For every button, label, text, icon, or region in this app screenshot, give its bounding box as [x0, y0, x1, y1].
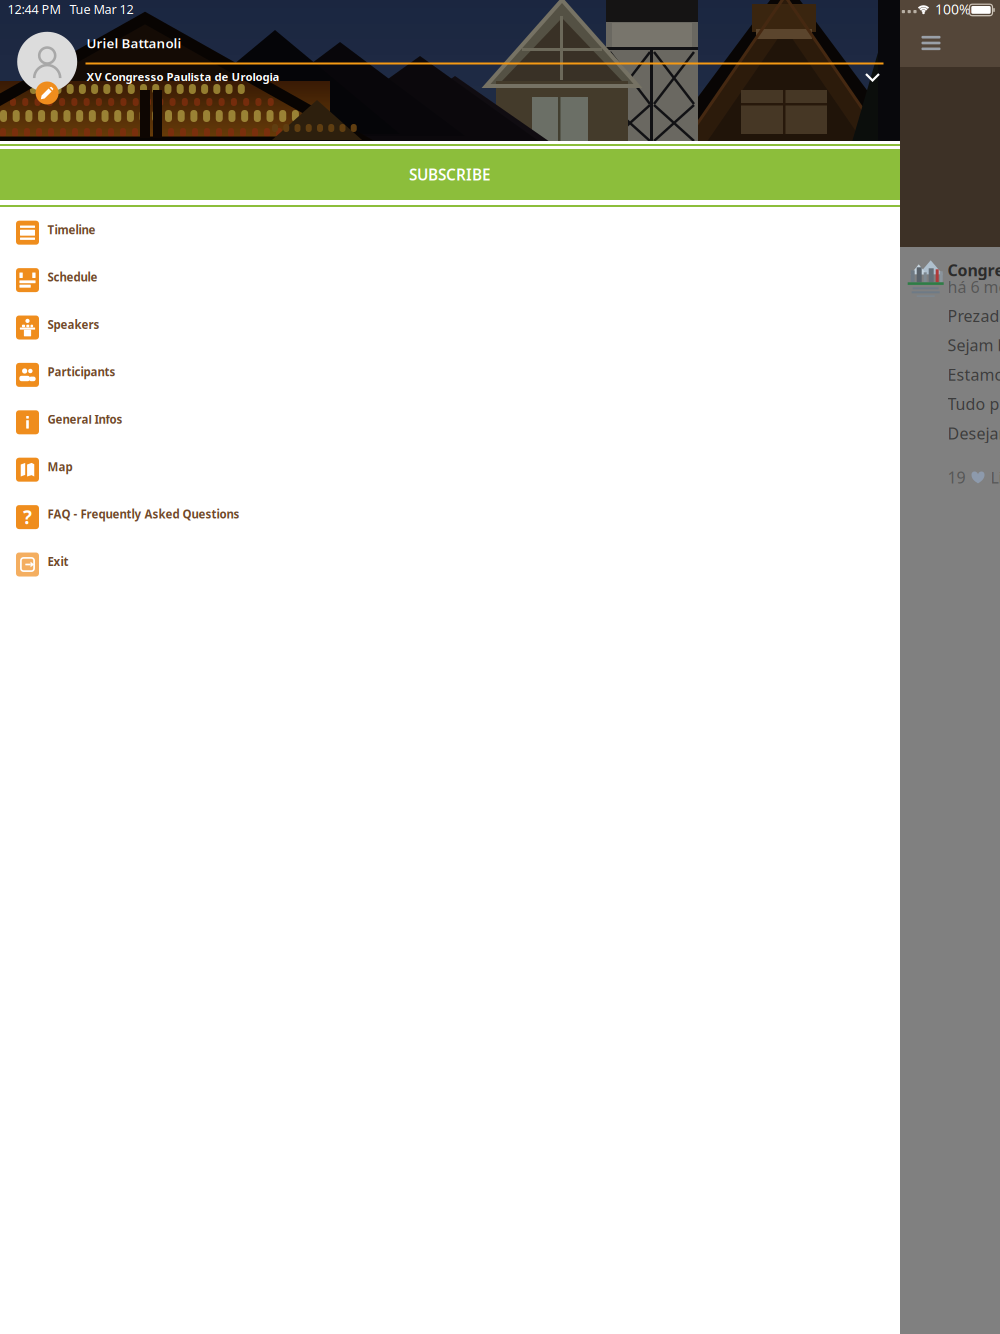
button[interactable]: Map [0, 446, 900, 493]
staticText: Speakers [47, 317, 99, 332]
staticText: ? [23, 504, 32, 530]
staticText: 12:44 PM Tue Mar 12 [7, 0, 133, 18]
button[interactable]: Menu [915, 29, 947, 57]
staticText: Congres [947, 259, 1000, 281]
staticText: Participants [47, 364, 115, 380]
staticText: SUBSCRIBE [409, 164, 491, 185]
staticText: Exit [47, 554, 68, 569]
staticText: Map [47, 459, 72, 474]
staticText: Li [990, 466, 1000, 488]
staticText: Desejamo [947, 422, 1000, 444]
staticText: 100% [935, 0, 971, 19]
button[interactable]: Expand profile [860, 68, 885, 86]
staticText: Uriel Battanoli [86, 34, 181, 52]
staticText: Tudo plan [947, 393, 1000, 415]
staticText: Timeline [47, 222, 95, 237]
button[interactable]: Edit profile photo [36, 81, 59, 104]
staticText: Prezados [947, 305, 1000, 327]
staticText: 19 [947, 466, 965, 488]
staticText: XV Congresso Paulista de Urologia [86, 69, 279, 84]
staticText: há 6 mese [947, 276, 1000, 298]
staticText: Schedule [47, 269, 97, 285]
button[interactable]: Schedule [0, 256, 900, 304]
button[interactable]: Exit [0, 541, 900, 588]
staticText: Estamos [947, 364, 1000, 385]
button[interactable]: ? [0, 493, 900, 541]
staticText: FAQ - Frequently Asked Questions [47, 506, 239, 522]
button[interactable]: Speakers [0, 304, 900, 351]
staticText: Sejam be [947, 334, 1000, 356]
button[interactable]: Timeline [0, 209, 900, 256]
staticText: General Infos [47, 411, 122, 427]
button[interactable]: General Infos [0, 399, 900, 446]
button[interactable]: SUBSCRIBE [0, 149, 900, 200]
button[interactable]: Participants [0, 351, 900, 399]
